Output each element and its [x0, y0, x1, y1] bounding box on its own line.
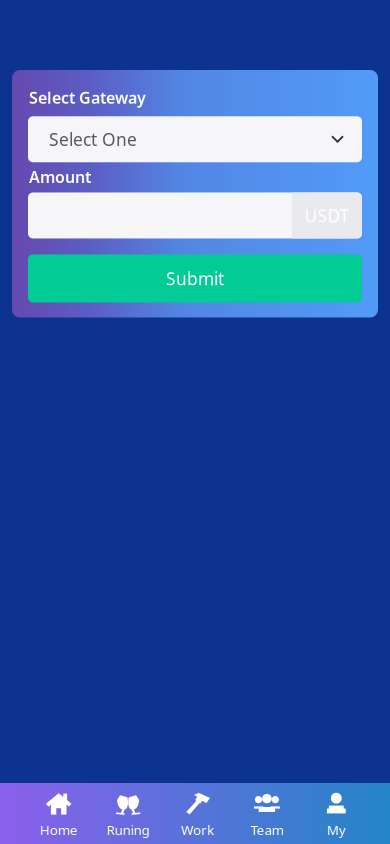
- button[interactable]: My: [302, 783, 371, 844]
- staticText: USDT: [304, 204, 349, 227]
- staticText: Select Gateway: [29, 87, 146, 108]
- button[interactable]: Select One: [28, 116, 362, 162]
- button[interactable]: Home: [24, 783, 93, 844]
- button[interactable]: Runing: [93, 783, 163, 844]
- staticText: Work: [181, 821, 214, 839]
- button[interactable]: Submit: [28, 254, 362, 302]
- button[interactable]: Work: [163, 783, 232, 844]
- staticText: Select One: [49, 128, 137, 151]
- button[interactable]: Team: [232, 783, 302, 844]
- staticText: Home: [40, 821, 78, 839]
- staticText: Submit: [166, 267, 224, 290]
- staticText: Amount: [29, 166, 91, 187]
- staticText: Team: [250, 821, 283, 839]
- staticText: My: [327, 821, 346, 839]
- staticText: Runing: [107, 821, 150, 839]
